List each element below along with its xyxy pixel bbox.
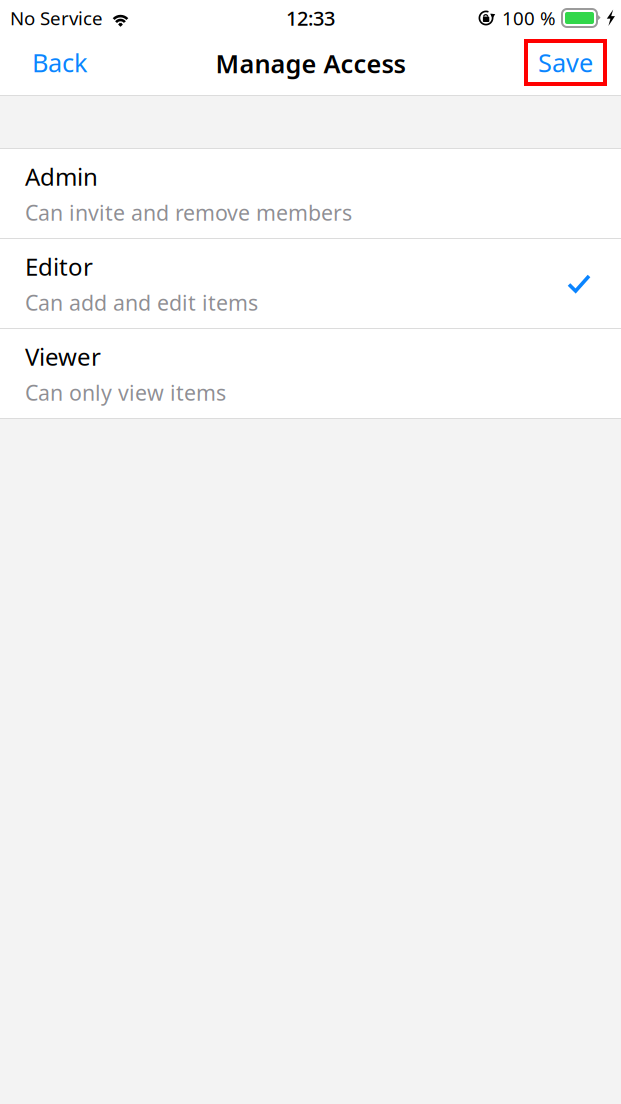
staticText: Manage Access xyxy=(215,47,405,80)
staticText: 12:33 xyxy=(286,5,335,31)
staticText: 100 % xyxy=(502,6,556,30)
button[interactable]: Back xyxy=(22,43,98,87)
button[interactable]: Editor xyxy=(0,239,621,328)
staticText: No Service xyxy=(10,6,103,30)
staticText: Can add and edit items xyxy=(25,288,258,317)
button[interactable]: Admin xyxy=(0,149,621,238)
staticText: Editor xyxy=(25,250,93,282)
staticText: Can only view items xyxy=(25,378,226,407)
button[interactable]: Viewer xyxy=(0,329,621,418)
staticText: Viewer xyxy=(25,340,101,372)
button[interactable]: Save xyxy=(526,44,605,87)
staticText: Can invite and remove members xyxy=(25,198,352,227)
staticText: Admin xyxy=(25,160,98,192)
staticText: Save xyxy=(538,46,593,79)
staticText: Back xyxy=(32,46,88,79)
